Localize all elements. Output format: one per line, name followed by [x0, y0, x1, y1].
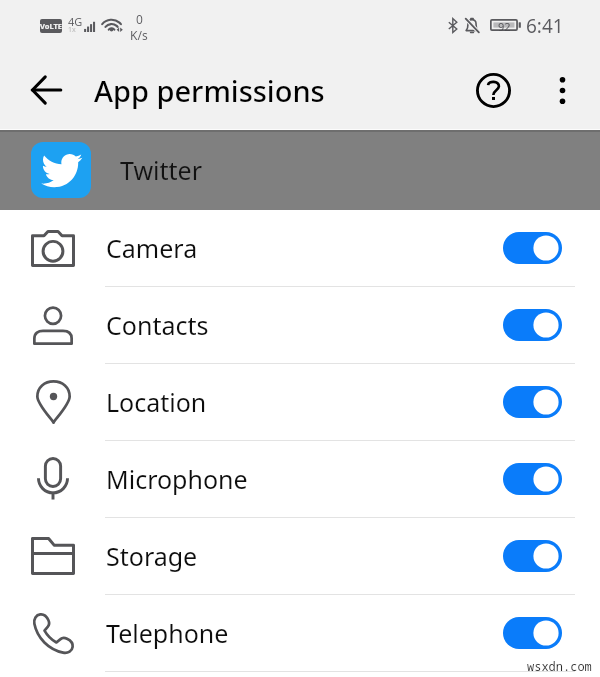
staticText: Camera	[106, 231, 198, 265]
staticText: 92	[498, 19, 511, 31]
button[interactable]: Help	[460, 57, 527, 124]
staticText: K/s	[130, 27, 148, 43]
button[interactable]: Twitter	[0, 130, 600, 210]
staticText: Location	[106, 385, 207, 419]
staticText: Microphone	[106, 462, 248, 496]
staticText: 6:41	[526, 13, 564, 39]
button[interactable]: Camera	[0, 210, 600, 287]
staticText: App permissions	[94, 71, 325, 110]
staticText: VoLTE	[40, 21, 62, 31]
staticText: 4G	[68, 14, 83, 29]
staticText: Storage	[106, 539, 198, 573]
button[interactable]: More options	[529, 57, 596, 124]
button[interactable]: Location	[0, 364, 600, 441]
button[interactable]: Storage	[0, 518, 600, 595]
staticText: Twitter	[120, 153, 202, 187]
staticText: 1x	[68, 25, 76, 35]
button[interactable]: Telephone	[0, 595, 600, 672]
button[interactable]: Microphone	[0, 441, 600, 518]
staticText: Contacts	[106, 308, 209, 342]
staticText: wsxdn.com	[527, 658, 592, 674]
button[interactable]: Back	[13, 57, 79, 123]
staticText: Telephone	[106, 616, 229, 650]
button[interactable]: Contacts	[0, 287, 600, 364]
staticText: 0	[136, 11, 143, 27]
